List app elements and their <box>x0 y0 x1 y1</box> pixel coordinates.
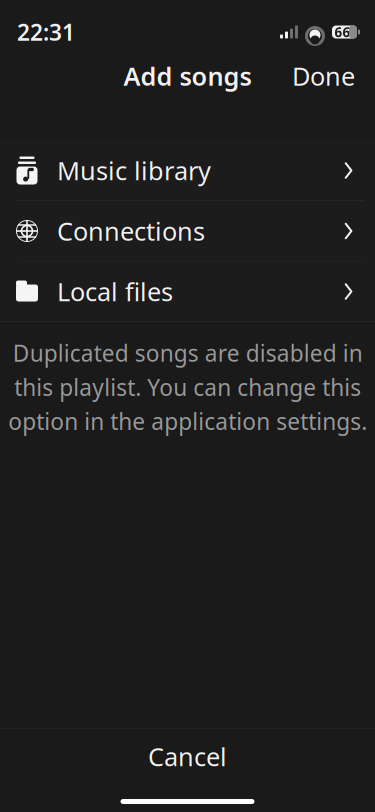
staticText: Add songs <box>123 59 251 93</box>
staticText: Connections <box>57 214 205 248</box>
button[interactable]: Cancel <box>0 728 375 784</box>
button[interactable]: Music library <box>0 140 375 200</box>
staticText: Music library <box>57 154 211 187</box>
staticText: Cancel <box>148 740 227 773</box>
button[interactable]: Done <box>282 51 365 101</box>
staticText: Local files <box>57 275 173 308</box>
staticText: Duplicated songs are disabled in this pl… <box>8 338 367 436</box>
button[interactable]: Local files <box>0 261 375 321</box>
staticText: Done <box>292 59 355 93</box>
button[interactable]: Connections <box>0 201 375 261</box>
staticText: 66 <box>334 23 350 41</box>
staticText: 22:31 <box>17 17 75 47</box>
